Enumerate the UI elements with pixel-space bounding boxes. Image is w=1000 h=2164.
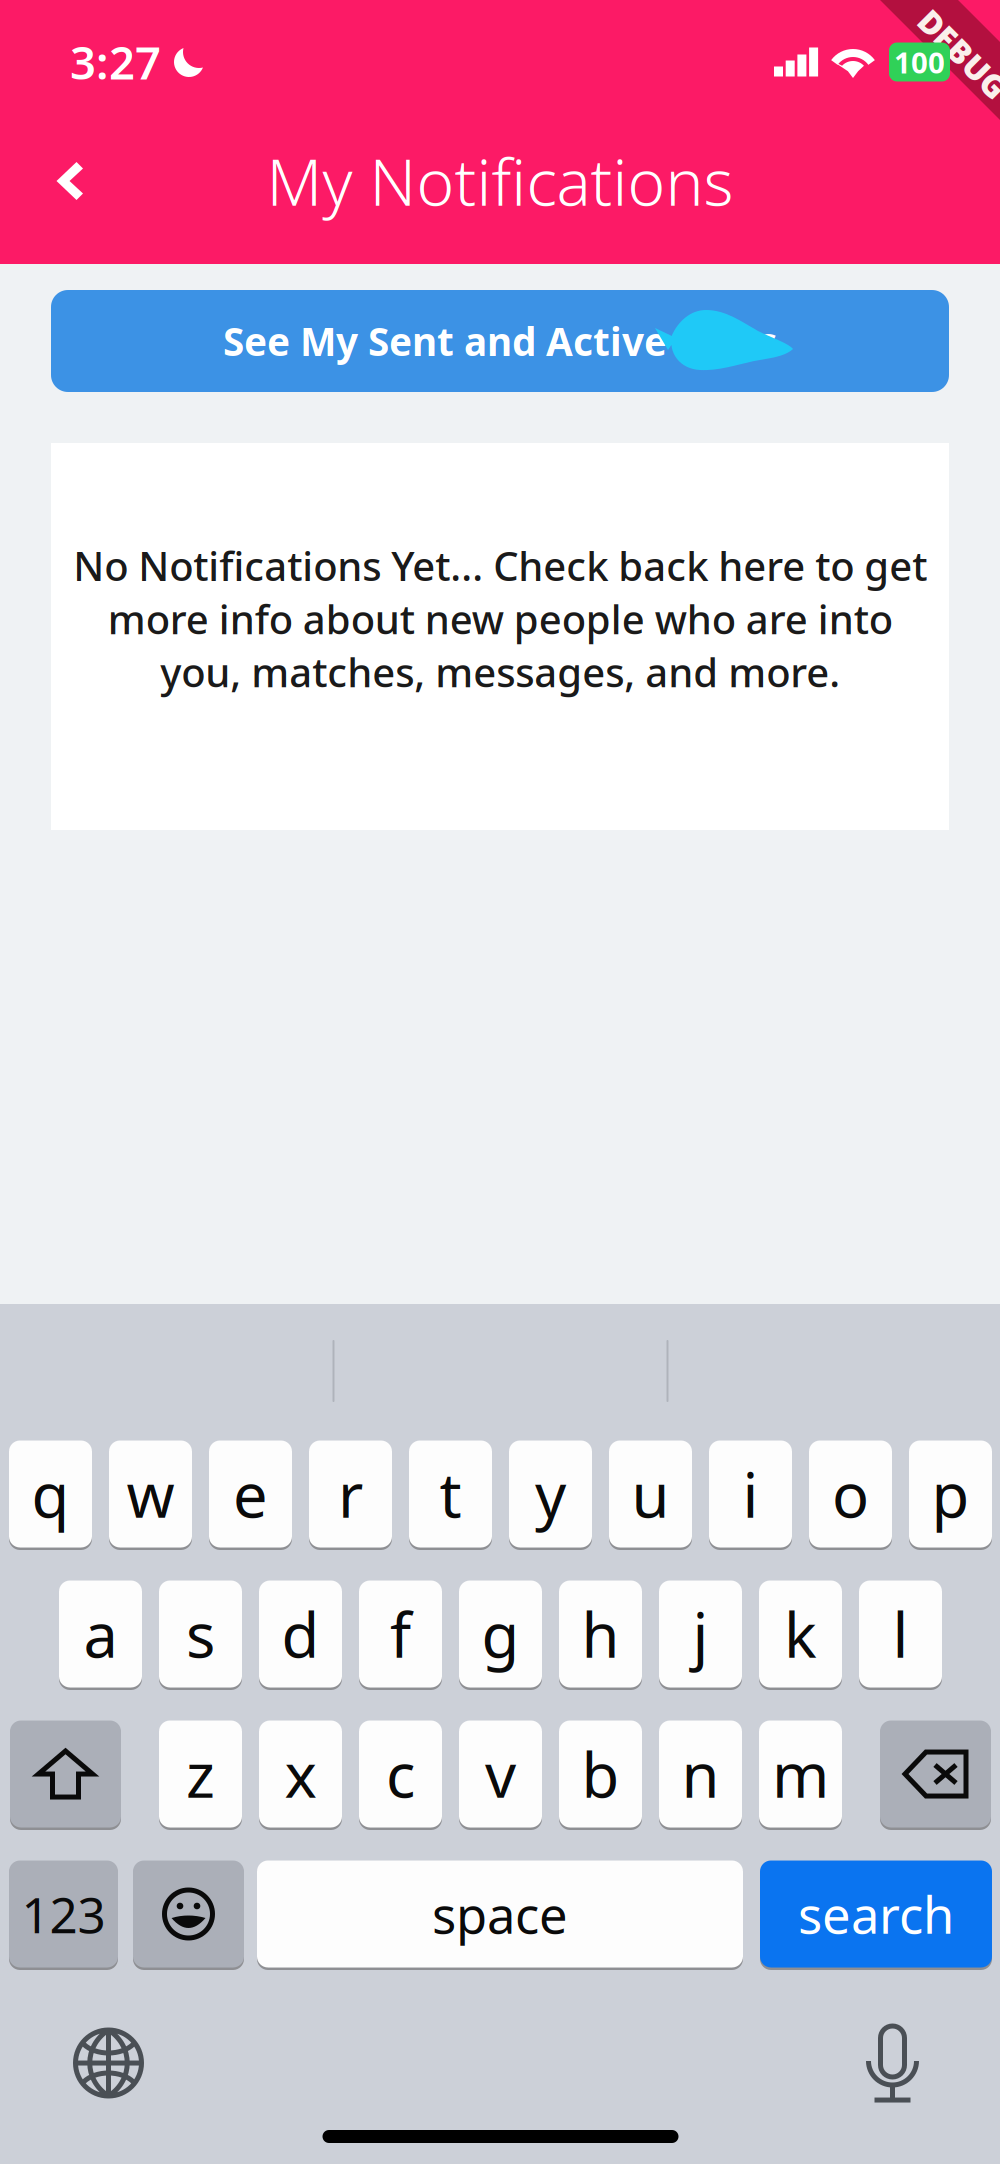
- button[interactable]: x: [259, 1718, 342, 1830]
- staticText: f: [390, 1593, 411, 1675]
- staticText: e: [233, 1453, 268, 1535]
- staticText: v: [485, 1733, 516, 1815]
- staticText: i: [742, 1453, 758, 1535]
- button[interactable]: See My Sent and Active Likes: [0, 290, 1000, 392]
- staticText: p: [931, 1453, 969, 1535]
- staticText: u: [631, 1453, 669, 1535]
- button[interactable]: w: [109, 1438, 192, 1550]
- button[interactable]: i: [709, 1438, 792, 1550]
- staticText: t: [439, 1453, 461, 1535]
- staticText: 100: [894, 42, 945, 81]
- staticText: y: [535, 1453, 566, 1535]
- button[interactable]: o: [809, 1438, 892, 1550]
- button[interactable]: y: [509, 1438, 592, 1550]
- staticText: l: [892, 1593, 908, 1675]
- button[interactable]: j: [659, 1578, 742, 1690]
- staticText: 123: [21, 1881, 105, 1947]
- button[interactable]: 123: [9, 1858, 118, 1970]
- staticText: q: [31, 1453, 69, 1535]
- staticText: My Notifications: [266, 138, 733, 223]
- button[interactable]: q: [9, 1438, 92, 1550]
- button[interactable]: Back: [0, 128, 140, 234]
- staticText: d: [281, 1593, 319, 1675]
- button[interactable]: c: [359, 1718, 442, 1830]
- staticText: o: [832, 1453, 869, 1535]
- staticText: c: [386, 1733, 415, 1815]
- staticText: k: [784, 1593, 817, 1675]
- button[interactable]: s: [159, 1578, 242, 1690]
- button[interactable]: f: [359, 1578, 442, 1690]
- button[interactable]: u: [609, 1438, 692, 1550]
- staticText: search: [798, 1880, 954, 1948]
- staticText: b: [581, 1733, 619, 1815]
- staticText: m: [772, 1733, 829, 1815]
- button[interactable]: b: [559, 1718, 642, 1830]
- staticText: No Notifications Yet... Check back here …: [73, 539, 927, 698]
- staticText: n: [681, 1733, 719, 1815]
- button[interactable]: n: [659, 1718, 742, 1830]
- button[interactable]: g: [459, 1578, 542, 1690]
- staticText: a: [83, 1593, 117, 1675]
- staticText: DEBUG: [907, 33, 1000, 75]
- button[interactable]: Change keyboard: [53, 2017, 163, 2109]
- staticText: z: [186, 1733, 215, 1815]
- button[interactable]: space: [257, 1858, 743, 1970]
- staticText: 3:27: [70, 32, 161, 92]
- button[interactable]: a: [59, 1578, 142, 1690]
- button[interactable]: e: [209, 1438, 292, 1550]
- button[interactable]: search: [760, 1858, 992, 1970]
- button[interactable]: m: [759, 1718, 842, 1830]
- button[interactable]: p: [909, 1438, 992, 1550]
- staticText: j: [692, 1593, 708, 1675]
- button[interactable]: h: [559, 1578, 642, 1690]
- button[interactable]: r: [309, 1438, 392, 1550]
- staticText: h: [581, 1593, 619, 1675]
- button[interactable]: k: [759, 1578, 842, 1690]
- staticText: See My Sent and Active Likes: [223, 315, 777, 367]
- button[interactable]: Delete: [880, 1718, 991, 1830]
- staticText: w: [126, 1453, 174, 1535]
- staticText: g: [481, 1593, 519, 1675]
- button[interactable]: z: [159, 1718, 242, 1830]
- button[interactable]: v: [459, 1718, 542, 1830]
- button[interactable]: l: [859, 1578, 942, 1690]
- staticText: x: [284, 1733, 316, 1815]
- staticText: r: [338, 1453, 363, 1535]
- button[interactable]: Shift: [10, 1718, 121, 1830]
- button[interactable]: Emoji: [133, 1858, 244, 1970]
- staticText: s: [186, 1593, 215, 1675]
- button[interactable]: t: [409, 1438, 492, 1550]
- button[interactable]: Dictation: [837, 2017, 947, 2109]
- button[interactable]: d: [259, 1578, 342, 1690]
- staticText: space: [432, 1880, 568, 1948]
